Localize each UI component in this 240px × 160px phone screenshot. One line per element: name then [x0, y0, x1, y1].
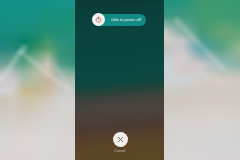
- button[interactable]: slide to power off: [92, 13, 146, 26]
- staticText: Cancel: [104, 148, 136, 155]
- button[interactable]: Cancel: [113, 132, 128, 147]
- staticText: slide to power off: [111, 17, 142, 22]
